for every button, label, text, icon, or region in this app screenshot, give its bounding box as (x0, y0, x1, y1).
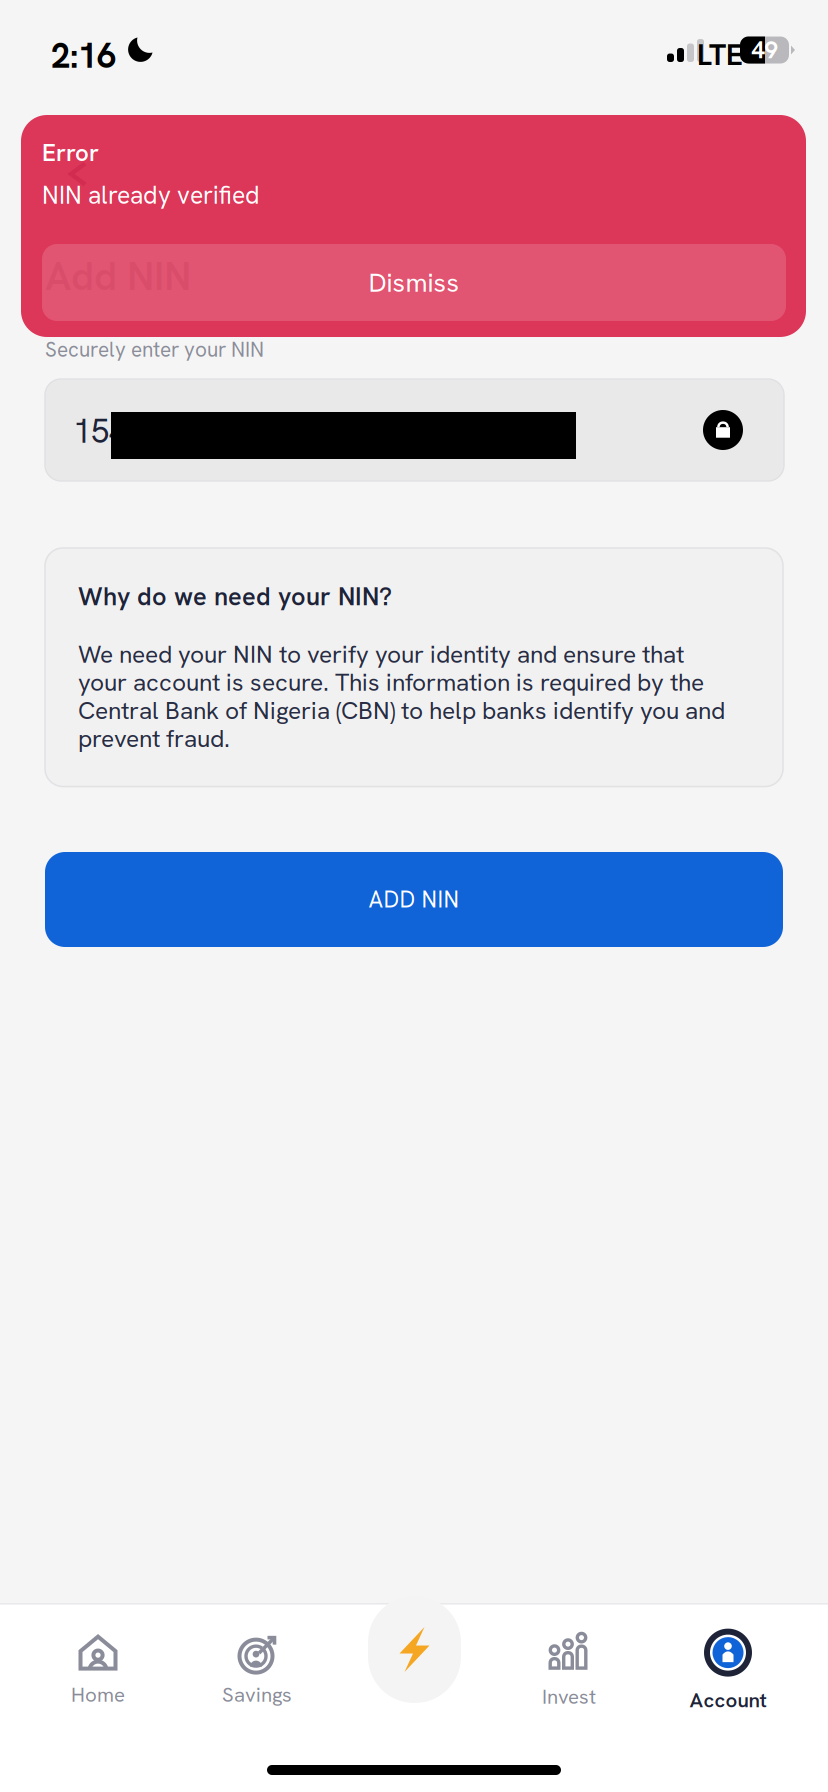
button[interactable]: Home (13, 1631, 183, 1711)
button[interactable]: Savings (172, 1631, 342, 1711)
button[interactable]: Back (53, 146, 103, 202)
staticText: Add NIN (45, 250, 191, 302)
staticText: Account (689, 1687, 766, 1713)
staticText: Dismiss (368, 265, 459, 300)
button[interactable]: Secure entry (703, 410, 743, 450)
button[interactable]: ADD NIN (45, 852, 783, 947)
staticText: 49 (751, 34, 777, 66)
staticText: Securely enter your NIN (45, 336, 264, 363)
staticText: Savings (222, 1681, 292, 1708)
button[interactable]: Quick action (368, 1596, 461, 1703)
staticText: Home (71, 1681, 125, 1708)
staticText: Invest (542, 1683, 596, 1710)
button[interactable]: Invest (484, 1631, 654, 1711)
staticText: Error (42, 137, 99, 168)
staticText: We need your NIN to verify your identity… (78, 640, 725, 752)
button[interactable]: Account (643, 1631, 813, 1711)
staticText: Why do we need your NIN? (78, 580, 392, 613)
staticText: 154 (73, 410, 127, 453)
staticText: LTE (697, 36, 743, 74)
staticText: 2:16 (51, 33, 116, 78)
button[interactable]: Dismiss (42, 244, 786, 321)
staticText: NIN already verified (42, 179, 260, 211)
staticText: ADD NIN (368, 885, 459, 914)
